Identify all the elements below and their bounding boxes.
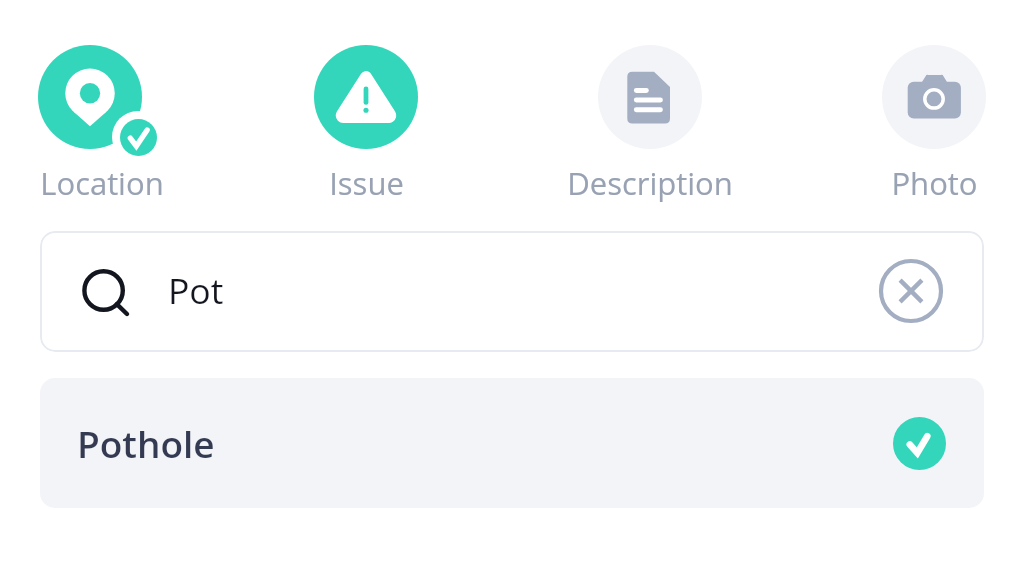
button[interactable]: Location [38,45,165,204]
staticText: Pothole [77,418,215,468]
button[interactable]: Issue [314,45,418,204]
staticText: Issue [329,162,404,204]
button[interactable]: Description [567,45,733,204]
staticText: Photo [891,162,978,204]
staticText: Pot [168,266,224,314]
button[interactable]: Photo [882,45,986,204]
button[interactable]: Clear search [878,258,944,324]
staticText: Location [40,162,164,204]
button[interactable]: Pot [40,231,984,352]
button[interactable]: Pothole [40,378,984,508]
staticText: Description [567,162,733,204]
